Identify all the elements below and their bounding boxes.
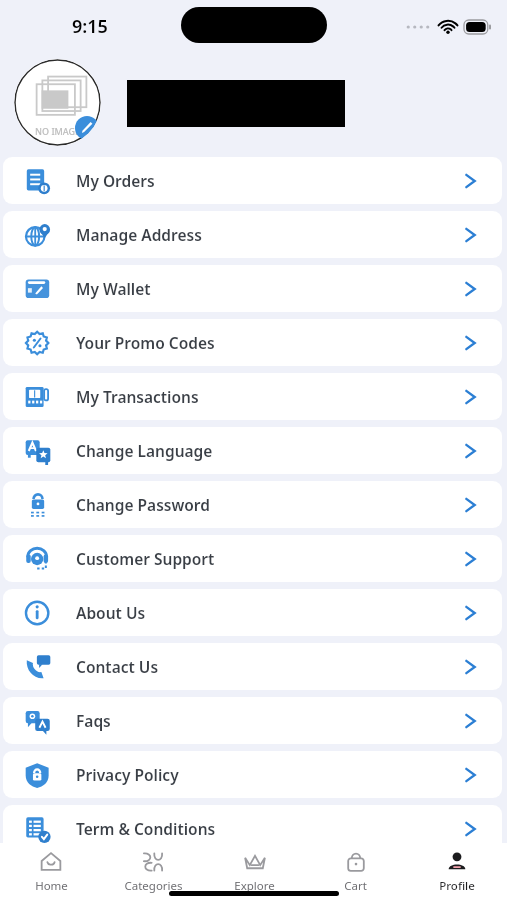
staticText: 9:15	[72, 14, 108, 39]
staticText: My Transactions	[76, 386, 465, 407]
button[interactable]: Explore	[204, 849, 305, 900]
staticText: Explore	[234, 878, 275, 894]
staticText: Categories	[124, 878, 183, 894]
staticText: Your Promo Codes	[76, 332, 465, 353]
button[interactable]: My Transactions	[3, 373, 502, 420]
staticText: Privacy Policy	[76, 764, 465, 785]
staticText: Cart	[344, 878, 367, 894]
button[interactable]: About Us	[3, 589, 502, 636]
button[interactable]: My Orders	[3, 157, 502, 204]
staticText: Change Password	[76, 494, 465, 515]
button[interactable]: Change Password	[3, 481, 502, 528]
staticText: Home	[35, 878, 68, 894]
button[interactable]: Edit profile photo	[14, 59, 101, 146]
button[interactable]: Home	[0, 849, 102, 900]
button[interactable]: Contact Us	[3, 643, 502, 690]
staticText: Contact Us	[76, 656, 465, 677]
staticText: Profile	[439, 878, 475, 894]
button[interactable]: Term & Conditions	[3, 805, 502, 852]
button[interactable]: Profile	[406, 849, 507, 900]
button[interactable]: Faqs	[3, 697, 502, 744]
staticText: About Us	[76, 602, 465, 623]
button[interactable]: Categories	[102, 849, 204, 900]
button[interactable]: Cart	[305, 849, 406, 900]
staticText: My Orders	[76, 170, 465, 191]
button[interactable]: Customer Support	[3, 535, 502, 582]
button[interactable]: Your Promo Codes	[3, 319, 502, 366]
staticText: Manage Address	[76, 224, 465, 245]
button[interactable]: Privacy Policy	[3, 751, 502, 798]
staticText: Change Language	[76, 440, 465, 461]
button[interactable]: Change Language	[3, 427, 502, 474]
button[interactable]: My Wallet	[3, 265, 502, 312]
staticText: Term & Conditions	[76, 818, 465, 839]
staticText: Faqs	[76, 710, 465, 731]
staticText: My Wallet	[76, 278, 465, 299]
staticText: Customer Support	[76, 548, 465, 569]
staticText: NO IMAGE	[35, 125, 81, 137]
button[interactable]: Manage Address	[3, 211, 502, 258]
